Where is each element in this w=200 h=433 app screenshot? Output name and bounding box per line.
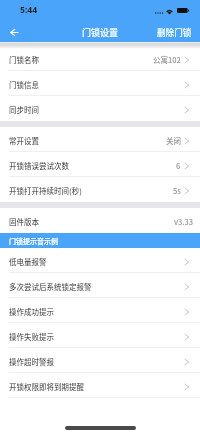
staticText: 门锁名称 — [9, 54, 39, 65]
staticText: 门锁提示音示例 — [9, 236, 58, 246]
staticText: v3.33 — [174, 216, 194, 227]
button[interactable]: 同步时间 — [0, 96, 200, 121]
button[interactable]: 门锁提示音示例 — [0, 233, 200, 248]
button[interactable]: 常开设置 — [0, 127, 200, 152]
button[interactable]: 门锁信息 — [0, 71, 200, 96]
button[interactable]: 门锁名称 — [0, 46, 200, 71]
staticText: 多次尝试后系统锁定报警 — [9, 281, 92, 292]
staticText: 固件版本 — [9, 216, 39, 227]
button[interactable]: 开锁打开持续时间(秒) — [0, 177, 200, 202]
staticText: 同步时间 — [9, 104, 39, 115]
button[interactable]: 删除门锁 — [144, 24, 200, 38]
staticText: 常开设置 — [9, 135, 39, 146]
staticText: 操作超时警报 — [9, 356, 54, 367]
button[interactable]: Back — [0, 20, 28, 42]
staticText: 5s — [173, 185, 181, 196]
button[interactable]: 操作超时警报 — [0, 348, 200, 373]
staticText: 开锁权限即将到期提醒 — [9, 381, 84, 392]
button[interactable]: 多次尝试后系统锁定报警 — [0, 273, 200, 298]
button[interactable]: 操作失败提示 — [0, 323, 200, 348]
button[interactable]: 开锁错误尝试次数 — [0, 152, 200, 177]
button[interactable]: 固件版本 — [0, 208, 200, 233]
staticText: 操作成功提示 — [9, 306, 54, 317]
staticText: 关闭 — [166, 135, 181, 146]
staticText: 6 — [176, 160, 181, 171]
staticText: 低电量报警 — [9, 256, 47, 267]
staticText: 门锁设置 — [82, 26, 119, 39]
staticText: 5:44 — [20, 4, 38, 16]
staticText: 开锁错误尝试次数 — [9, 160, 69, 171]
staticText: 删除门锁 — [157, 26, 192, 38]
staticText: 开锁打开持续时间(秒) — [9, 185, 82, 196]
staticText: 操作失败提示 — [9, 331, 54, 342]
staticText: 门锁信息 — [9, 79, 39, 90]
button[interactable]: 操作成功提示 — [0, 298, 200, 323]
staticText: 公寓102 — [153, 54, 181, 65]
button[interactable]: 低电量报警 — [0, 248, 200, 273]
button[interactable]: 开锁权限即将到期提醒 — [0, 373, 200, 398]
